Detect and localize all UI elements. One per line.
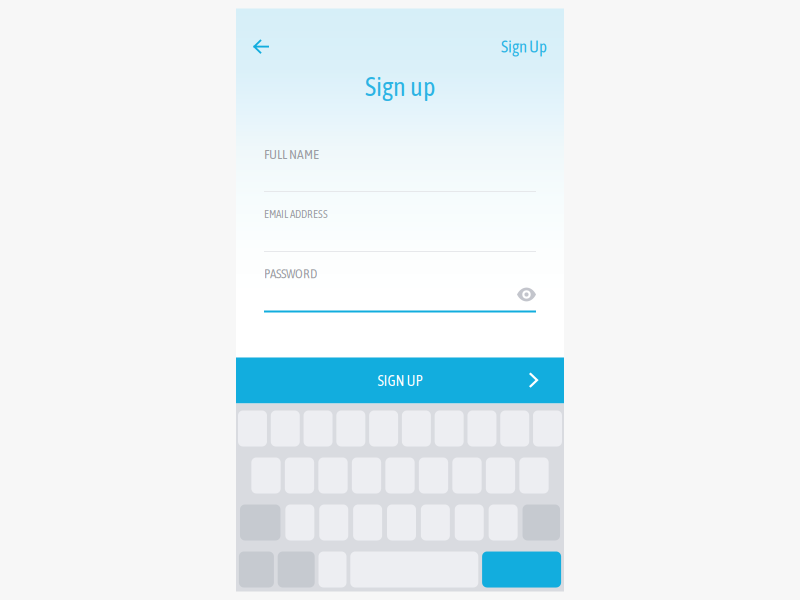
button[interactable]: SIGN UP	[236, 357, 564, 403]
staticText: FULL NAME	[264, 146, 319, 162]
staticText: Sign Up	[501, 37, 547, 56]
button[interactable]: Back	[252, 31, 296, 61]
staticText: SIGN UP	[377, 372, 422, 389]
staticText: PASSWORD	[264, 266, 317, 281]
button[interactable]: PASSWORD	[264, 268, 536, 328]
button[interactable]: EMAIL ADDRESS	[264, 208, 536, 268]
staticText: EMAIL ADDRESS	[264, 208, 328, 220]
button[interactable]: FULL NAME	[264, 148, 536, 208]
button[interactable]: Sign Up	[501, 31, 547, 61]
staticText: Sign up	[365, 71, 435, 101]
